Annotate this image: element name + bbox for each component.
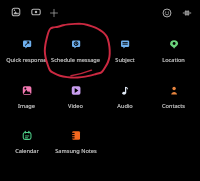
staticText: Location xyxy=(162,56,185,64)
button[interactable]: Gallery xyxy=(7,3,25,21)
button[interactable]: Image xyxy=(2,76,51,116)
button[interactable]: Subject xyxy=(100,30,149,70)
staticText: Calendar xyxy=(15,147,39,155)
staticText: Schedule message xyxy=(51,56,100,64)
button[interactable]: Calendar xyxy=(2,121,51,161)
staticText: Video xyxy=(68,102,83,110)
staticText: Image xyxy=(18,102,35,110)
button[interactable]: Emoji xyxy=(158,4,176,22)
button[interactable]: Contacts xyxy=(149,76,198,116)
staticText: Samsung Notes xyxy=(55,147,97,155)
button[interactable]: Add attachment xyxy=(45,4,63,22)
button[interactable]: Samsung Notes xyxy=(51,121,100,161)
staticText: Audio xyxy=(117,102,133,110)
button[interactable]: Schedule message xyxy=(51,30,100,70)
button[interactable]: Effects xyxy=(178,4,196,22)
staticText: Subject xyxy=(115,56,135,64)
button[interactable]: Video xyxy=(51,76,100,116)
button[interactable]: Camera xyxy=(27,3,45,21)
button[interactable]: Audio xyxy=(100,76,149,116)
staticText: Quick response xyxy=(6,56,47,64)
staticText: Contacts xyxy=(162,102,185,110)
button[interactable]: Location xyxy=(149,30,198,70)
button[interactable]: Quick response xyxy=(2,30,51,70)
